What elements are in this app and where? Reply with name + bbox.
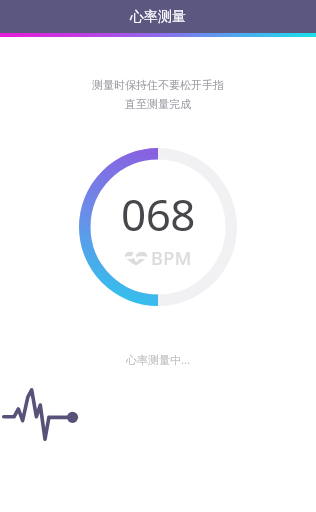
staticText: 068 [121, 184, 196, 244]
staticText: 心率测量中... [126, 352, 190, 367]
staticText: 心率测量 [130, 8, 186, 26]
button[interactable]: 068 [79, 148, 237, 306]
other: Heart rate waveform [2, 386, 88, 442]
staticText: 直至测量完成 [125, 97, 191, 111]
staticText: 测量时保持住不要松开手指 [92, 78, 224, 92]
staticText: BPM [151, 246, 192, 271]
